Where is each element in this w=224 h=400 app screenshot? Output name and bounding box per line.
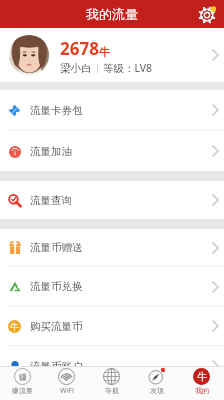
staticText: 牛 xyxy=(10,321,19,332)
staticText: 导航 xyxy=(105,386,119,395)
staticText: 流量币赠送 xyxy=(30,241,83,254)
staticText: 流量币账户 xyxy=(30,360,83,373)
button[interactable]: 流量加油 xyxy=(0,131,224,171)
button[interactable]: 牛 xyxy=(0,307,224,345)
button[interactable]: 流量币账户 xyxy=(0,346,224,386)
staticText: 我的 xyxy=(195,386,209,395)
staticText: 流量卡券包 xyxy=(30,104,83,117)
button[interactable]: WiFi xyxy=(44,367,89,400)
button[interactable]: 流量卡券包 xyxy=(0,90,224,130)
button[interactable]: 流量查询 xyxy=(0,181,224,219)
staticText: 梁小白 xyxy=(60,62,92,75)
button[interactable]: 赚 xyxy=(0,367,44,400)
staticText: 赚 xyxy=(19,372,27,382)
button[interactable]: 导航 xyxy=(89,367,134,400)
button[interactable]: 流量币赠送 xyxy=(0,229,224,266)
staticText: 流量加油 xyxy=(30,145,72,158)
staticText: WiFi xyxy=(60,386,74,396)
staticText: 流量币兑换 xyxy=(30,280,83,293)
staticText: 2678 xyxy=(60,37,99,60)
button[interactable]: 流量币兑换 xyxy=(0,267,224,306)
staticText: 发现 xyxy=(150,386,164,395)
button[interactable]: 2678 xyxy=(0,28,224,82)
staticText: 等级：LV8 xyxy=(103,61,153,75)
button[interactable]: 发现 xyxy=(134,367,179,400)
staticText: 购买流量币 xyxy=(30,320,83,333)
staticText: 牛 xyxy=(197,370,207,383)
staticText: 赚流量 xyxy=(12,386,33,395)
button[interactable]: Settings xyxy=(199,5,217,23)
staticText: 流量查询 xyxy=(30,194,72,207)
button[interactable]: 牛 xyxy=(179,367,224,400)
staticText: 牛 xyxy=(99,45,110,59)
staticText: 我的流量 xyxy=(86,6,138,22)
